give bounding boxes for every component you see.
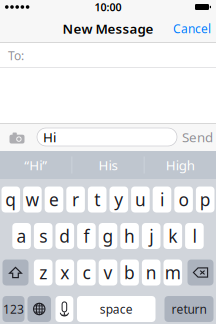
button[interactable]: c <box>77 259 96 285</box>
staticText: 10:00 <box>94 0 121 14</box>
button[interactable]: To: <box>0 43 216 68</box>
staticText: i <box>160 188 164 211</box>
button[interactable]: return <box>164 296 213 322</box>
staticText: r <box>72 188 79 211</box>
staticText: s <box>39 224 47 247</box>
button[interactable]: n <box>142 259 160 285</box>
button[interactable]: f <box>77 223 96 249</box>
button[interactable]: High <box>144 151 216 179</box>
button[interactable]: b <box>120 259 139 285</box>
button[interactable]: y <box>109 186 128 212</box>
staticText: l <box>192 224 196 247</box>
button[interactable]: His <box>72 151 144 179</box>
button[interactable]: h <box>120 223 139 249</box>
staticText: New Message <box>62 20 153 37</box>
button[interactable]: o <box>174 186 193 212</box>
button[interactable]: Shift <box>2 259 28 285</box>
staticText: Send <box>182 128 213 146</box>
staticText: b <box>124 261 135 284</box>
staticText: a <box>17 224 27 247</box>
staticText: To: <box>8 47 24 63</box>
staticText: Hi <box>43 128 56 146</box>
button[interactable]: p <box>196 186 214 212</box>
button[interactable]: e <box>45 186 63 212</box>
staticText: d <box>59 224 70 247</box>
button[interactable]: w <box>23 186 42 212</box>
button[interactable]: Send <box>177 123 214 151</box>
button[interactable]: v <box>99 259 117 285</box>
button[interactable]: i <box>153 186 171 212</box>
staticText: g <box>102 224 113 247</box>
staticText: “Hi” <box>24 156 47 174</box>
staticText: u <box>135 188 146 211</box>
button[interactable]: Delete <box>187 259 213 285</box>
button[interactable]: “Hi” <box>0 151 71 179</box>
button[interactable]: q <box>1 186 20 212</box>
button[interactable]: m <box>163 259 182 285</box>
staticText: e <box>49 188 59 211</box>
button[interactable]: k <box>163 223 182 249</box>
button[interactable]: Dictation <box>55 296 73 322</box>
staticText: m <box>165 261 181 284</box>
staticText: h <box>124 224 135 247</box>
staticText: High <box>166 156 195 174</box>
button[interactable]: l <box>185 223 204 249</box>
staticText: k <box>168 224 177 247</box>
staticText: return <box>171 301 206 317</box>
button[interactable]: Take photo <box>0 123 31 151</box>
staticText: z <box>39 261 47 284</box>
button[interactable]: 123 <box>2 296 24 322</box>
button[interactable]: r <box>66 186 85 212</box>
button[interactable]: Cancel <box>166 14 216 43</box>
button[interactable]: u <box>131 186 150 212</box>
staticText: t <box>94 188 100 211</box>
staticText: c <box>82 261 90 284</box>
staticText: o <box>179 188 189 211</box>
staticText: p <box>200 188 211 211</box>
staticText: w <box>25 188 39 211</box>
staticText: v <box>103 261 112 284</box>
button[interactable]: Next keyboard <box>27 296 51 322</box>
staticText: space <box>100 301 133 317</box>
button[interactable]: s <box>34 223 52 249</box>
staticText: j <box>149 224 153 247</box>
button[interactable]: space <box>77 296 155 322</box>
button[interactable]: d <box>55 223 74 249</box>
button[interactable]: g <box>99 223 117 249</box>
button[interactable]: j <box>142 223 160 249</box>
button[interactable]: z <box>34 259 52 285</box>
staticText: y <box>114 188 123 211</box>
button[interactable]: a <box>12 223 31 249</box>
button[interactable]: t <box>88 186 106 212</box>
staticText: 123 <box>3 301 24 317</box>
staticText: His <box>98 156 117 174</box>
staticText: n <box>146 261 157 284</box>
staticText: x <box>60 261 69 284</box>
staticText: f <box>83 224 89 247</box>
staticText: Cancel <box>173 20 211 36</box>
button[interactable]: x <box>55 259 74 285</box>
staticText: q <box>5 188 16 211</box>
